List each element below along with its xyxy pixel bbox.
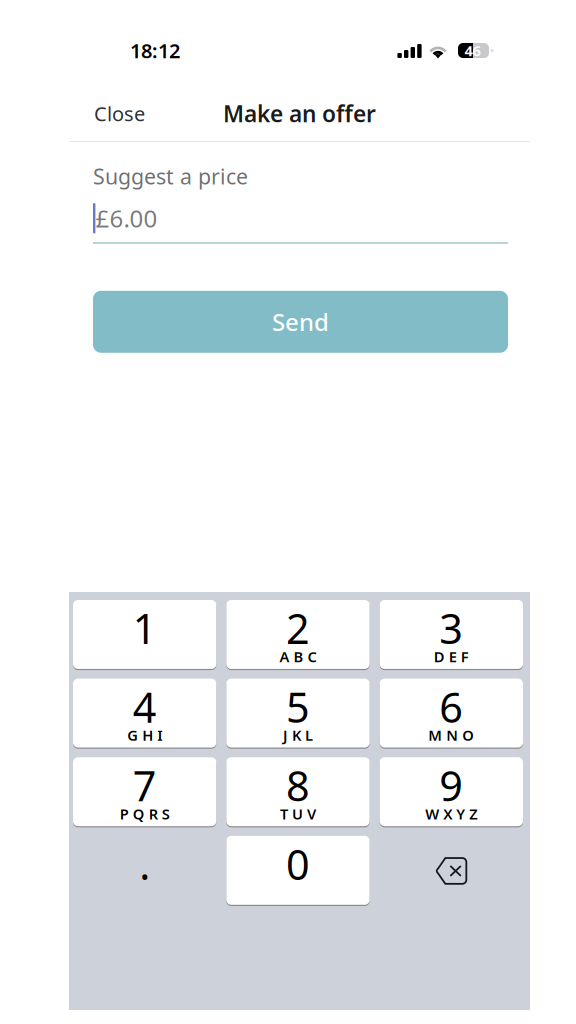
- staticText: 4: [133, 679, 157, 734]
- staticText: A B C: [279, 647, 316, 666]
- staticText: £6.00: [95, 202, 157, 234]
- staticText: 46: [464, 41, 480, 60]
- staticText: G H I: [127, 725, 162, 745]
- button[interactable]: 5: [226, 679, 370, 749]
- button[interactable]: Close: [69, 91, 163, 135]
- staticText: M N O: [428, 725, 474, 745]
- staticText: Send: [272, 306, 329, 338]
- staticText: 18:12: [130, 37, 180, 64]
- button[interactable]: 0: [226, 836, 370, 906]
- staticText: 0: [286, 836, 310, 891]
- staticText: 3: [439, 601, 463, 655]
- staticText: 9: [439, 758, 463, 813]
- staticText: D E F: [434, 647, 469, 666]
- button[interactable]: Decimal point: [73, 836, 216, 906]
- staticText: 2: [286, 601, 310, 655]
- staticText: 6: [439, 679, 463, 734]
- button[interactable]: 4: [73, 679, 216, 749]
- button[interactable]: 2: [226, 600, 370, 670]
- button[interactable]: 1: [73, 600, 216, 670]
- staticText: Suggest a price: [93, 162, 248, 190]
- button[interactable]: 6: [380, 679, 523, 749]
- staticText: 7: [133, 758, 157, 813]
- staticText: .: [139, 836, 150, 891]
- staticText: 5: [286, 679, 310, 734]
- staticText: P Q R S: [120, 804, 170, 823]
- staticText: 1: [133, 601, 157, 655]
- staticText: W X Y Z: [425, 804, 477, 823]
- staticText: T U V: [280, 804, 316, 823]
- staticText: Close: [94, 100, 145, 127]
- button[interactable]: Send: [93, 291, 508, 353]
- button[interactable]: 8: [226, 757, 370, 827]
- staticText: 8: [286, 758, 310, 813]
- button[interactable]: 3: [380, 600, 523, 670]
- button[interactable]: 9: [380, 757, 523, 827]
- staticText: Make an offer: [223, 98, 376, 128]
- staticText: J K L: [283, 725, 313, 745]
- button[interactable]: 7: [73, 757, 216, 827]
- button[interactable]: Delete: [380, 836, 523, 906]
